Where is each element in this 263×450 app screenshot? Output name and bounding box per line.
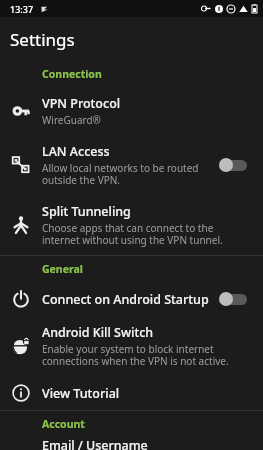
other: Split Tunneling [12,216,30,234]
other: VPN Protocol [12,102,30,120]
staticText: Split Tunneling [42,203,131,220]
button[interactable]: Email / Username [0,437,263,450]
staticText: Settings [10,28,75,51]
staticText: General [42,262,83,276]
staticText: 13:37 [10,3,34,15]
staticText: Enable your system to block internet con… [42,342,247,368]
staticText: WireGuard® [42,113,101,127]
staticText: Email / Username [42,437,148,450]
staticText: Choose apps that can connect to the inte… [42,221,247,247]
staticText: Account [42,417,85,431]
staticText: Connection [42,67,102,81]
button[interactable]: VPN Protocol [0,87,263,135]
button[interactable]: View Tutorial [0,376,263,410]
other: Connect on Android Startup [12,290,30,308]
staticText: Allow local networks to be routed outsid… [42,161,213,187]
staticText: VPN Protocol [42,95,121,112]
button[interactable]: Connect on Android Startup [0,282,263,316]
button[interactable]: LAN Access toggle [219,157,249,173]
staticText: View Tutorial [42,385,120,402]
button[interactable]: LAN Access [0,135,263,195]
button[interactable]: Connect on Android Startup toggle [219,291,249,307]
button[interactable]: Android Kill Switch [0,316,263,376]
staticText: LAN Access [42,143,110,160]
staticText: Android Kill Switch [42,324,154,341]
button[interactable]: Split Tunneling [0,195,263,255]
other: Android Kill Switch [12,337,30,355]
other: View Tutorial [12,384,30,402]
staticText: Connect on Android Startup [42,291,209,308]
other: LAN Access [12,156,30,174]
